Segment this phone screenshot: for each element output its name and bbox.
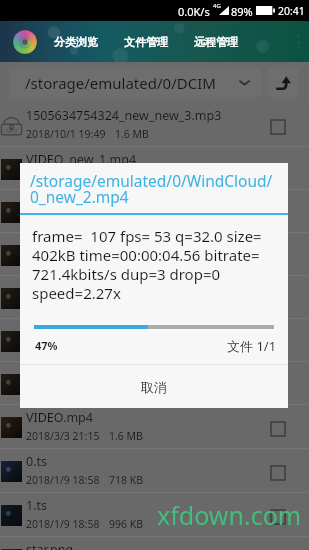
- staticText: 1.6 MB: [109, 386, 143, 400]
- button[interactable]: VIDEO_new_4.mp4: [0, 276, 309, 319]
- button[interactable]: VIDEO_new_1.mp4: [0, 147, 309, 190]
- staticText: 2018/3/3 21:15: [26, 343, 100, 357]
- button[interactable]: 0.ts: [0, 449, 309, 493]
- button[interactable]: 文件管理: [116, 21, 176, 62]
- button[interactable]: 1.ts: [0, 493, 309, 537]
- staticText: 2018/1/9 18:58: [26, 517, 100, 531]
- staticText: star.png: [26, 541, 74, 550]
- staticText: 718 KB: [109, 473, 144, 487]
- staticText: 2018/3/3 21:15: [26, 214, 100, 228]
- staticText: 89%: [231, 4, 253, 19]
- staticText: 2018/3/3 21:15: [26, 300, 100, 314]
- button[interactable]: Select 1.ts: [271, 510, 285, 524]
- staticText: /storage/emulated/0/WindCloud/ 0_new_2.m…: [30, 170, 273, 207]
- button[interactable]: VIDEO_new_2.mp4: [0, 190, 309, 233]
- staticText: 2018/3/3 21:15: [26, 429, 100, 443]
- staticText: VIDEO_new_4.mp4: [26, 280, 137, 297]
- staticText: VIDEO.mp4: [26, 409, 93, 426]
- button[interactable]: 分类浏览: [46, 21, 106, 62]
- staticText: MP3: [6, 127, 18, 134]
- staticText: 0.ts: [26, 453, 48, 470]
- staticText: 2018/3/3 21:15: [26, 171, 100, 185]
- staticText: 2018/10/1 19:49: [26, 127, 106, 141]
- staticText: 1.6 MB: [109, 171, 143, 185]
- button[interactable]: Select VIDEO.mp4: [271, 422, 285, 436]
- staticText: xfdown.com: [157, 498, 302, 532]
- staticText: /storage/emulated/0/DCIM: [25, 73, 239, 93]
- staticText: VIDEO_new_2.mp4: [26, 194, 137, 211]
- staticText: 远程管理: [194, 35, 238, 49]
- staticText: 47%: [35, 338, 58, 353]
- button[interactable]: MP3: [0, 103, 309, 147]
- button[interactable]: VIDEO_new_6.mp4: [0, 362, 309, 405]
- staticText: 4G: [213, 2, 221, 10]
- button[interactable]: 取消: [20, 365, 288, 408]
- button[interactable]: VIDEO_new_5.mp4: [0, 319, 309, 362]
- button[interactable]: Select 1505634754324_new_new_3.mp3: [271, 120, 285, 134]
- staticText: 1.6 MB: [109, 214, 143, 228]
- staticText: 文件管理: [124, 35, 168, 49]
- button[interactable]: VIDEO_new_3.mp4: [0, 233, 309, 276]
- staticText: VIDEO_new_5.mp4: [26, 323, 137, 340]
- staticText: VIDEO_new_1.mp4: [26, 151, 137, 168]
- button[interactable]: Up one level: [268, 68, 299, 97]
- staticText: 1.ts: [26, 497, 48, 514]
- staticText: VIDEO_new_3.mp4: [26, 237, 137, 254]
- staticText: 20:41: [278, 4, 305, 18]
- button[interactable]: Select VIDEO_new_5.mp4: [271, 336, 285, 350]
- button[interactable]: VIDEO.mp4: [0, 405, 309, 449]
- staticText: 2018/3/3 21:15: [26, 257, 100, 271]
- staticText: 1.6 MB: [109, 429, 143, 443]
- button[interactable]: Select VIDEO_new_1.mp4: [271, 164, 285, 178]
- button[interactable]: 远程管理: [186, 21, 246, 62]
- button[interactable]: /storage/emulated/0/DCIM: [9, 68, 261, 97]
- button[interactable]: Select 0.ts: [271, 466, 285, 480]
- staticText: 分类浏览: [54, 35, 98, 49]
- staticText: 1505634754324_new_new_3.mp3: [26, 107, 222, 124]
- button[interactable]: star.png: [0, 537, 309, 550]
- button[interactable]: Select VIDEO_new_2.mp4: [271, 207, 285, 221]
- staticText: frame= 107 fps= 53 q=32.0 size= 402kB ti…: [32, 226, 262, 303]
- staticText: 文件 1/1: [227, 337, 277, 355]
- staticText: 0.0K/s: [178, 4, 210, 19]
- staticText: 996 KB: [109, 517, 144, 531]
- staticText: 1.6 MB: [115, 127, 149, 141]
- staticText: 2018/1/9 18:58: [26, 473, 100, 487]
- staticText: 1.6 MB: [109, 257, 143, 271]
- staticText: 取消: [141, 379, 167, 395]
